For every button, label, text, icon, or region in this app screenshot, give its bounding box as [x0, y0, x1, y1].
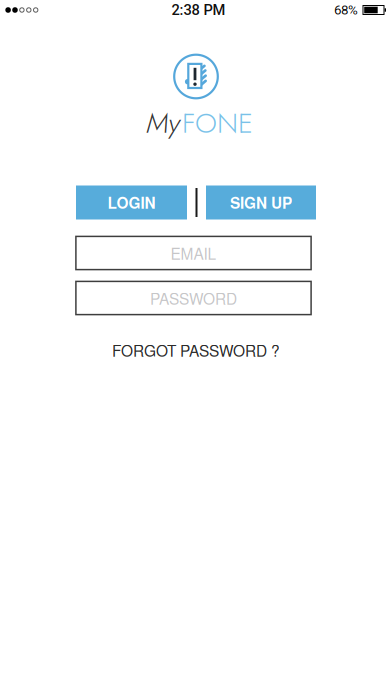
staticText: EMAIL [170, 242, 216, 264]
button[interactable]: LOGIN [76, 185, 187, 219]
staticText: FORGOT PASSWORD ? [112, 339, 280, 361]
staticText: 68% [334, 2, 358, 18]
staticText: FONE [182, 103, 253, 143]
button[interactable]: FORGOT PASSWORD ? [112, 340, 280, 360]
staticText: PASSWORD [150, 287, 237, 309]
button[interactable]: EMAIL [77, 235, 314, 270]
button[interactable]: SIGN UP [206, 185, 316, 219]
staticText: SIGN UP [230, 191, 292, 213]
button[interactable]: PASSWORD [77, 280, 314, 315]
staticText: My [146, 103, 180, 143]
staticText: 2:38 PM [171, 1, 225, 19]
staticText: LOGIN [107, 191, 155, 213]
